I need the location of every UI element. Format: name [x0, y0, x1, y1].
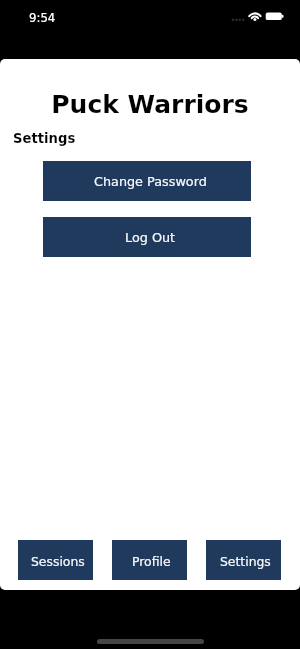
staticText: Settings	[13, 131, 76, 146]
staticText: Profile	[132, 554, 171, 568]
staticText: Puck Warriors	[0, 90, 300, 119]
button[interactable]: Log Out	[43, 217, 251, 257]
other: Status icons	[0, 0, 300, 59]
button[interactable]: Settings	[206, 540, 281, 580]
button[interactable]: Profile	[112, 540, 187, 580]
staticText: Change Password	[94, 174, 207, 189]
staticText: Settings	[220, 554, 271, 568]
staticText: Log Out	[125, 230, 176, 245]
button[interactable]: Change Password	[43, 161, 251, 201]
staticText: 9:54	[29, 10, 56, 25]
button[interactable]: Sessions	[18, 540, 93, 580]
staticText: Sessions	[31, 554, 85, 568]
